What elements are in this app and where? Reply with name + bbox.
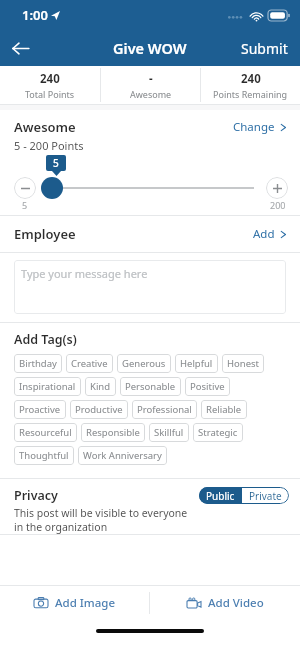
button[interactable]: Back xyxy=(0,30,40,66)
staticText: 1:00 xyxy=(22,6,48,24)
staticText: Reliable xyxy=(206,403,242,416)
staticText: Total Points xyxy=(25,88,75,100)
staticText: Resourceful xyxy=(19,426,72,439)
staticText: 5 xyxy=(53,156,59,170)
staticText: Personable xyxy=(125,380,176,393)
staticText: Responsible xyxy=(86,426,140,439)
button[interactable]: Points slider xyxy=(41,177,63,199)
button[interactable]: Public xyxy=(199,487,242,504)
staticText: Add Image xyxy=(55,595,116,611)
button[interactable]: Positive xyxy=(185,377,230,396)
button[interactable]: Employee xyxy=(0,216,300,252)
button[interactable]: Productive xyxy=(70,400,128,419)
button[interactable]: Inspirational xyxy=(14,377,81,396)
staticText: Helpful xyxy=(180,357,213,370)
staticText: Add xyxy=(253,226,275,242)
staticText: Professional xyxy=(137,403,192,416)
staticText: Add Video xyxy=(208,595,264,611)
staticText: Public xyxy=(206,489,235,503)
staticText: 5 xyxy=(22,199,28,211)
staticText: Points Remaining xyxy=(213,88,288,100)
button[interactable]: Increase points xyxy=(266,177,288,199)
staticText: Creative xyxy=(71,357,108,370)
staticText: 240 xyxy=(241,71,261,87)
staticText: Work Anniversary xyxy=(83,449,162,462)
staticText: Birthday xyxy=(19,357,57,370)
staticText: Awesome xyxy=(130,88,172,100)
button[interactable]: Proactive xyxy=(14,400,66,419)
button[interactable]: Resourceful xyxy=(14,423,77,442)
button[interactable]: - xyxy=(101,66,200,104)
button[interactable]: Add Video xyxy=(150,586,300,620)
staticText: Awesome xyxy=(14,118,76,136)
staticText: Thoughtful xyxy=(19,449,69,462)
staticText: Give WOW xyxy=(113,38,187,58)
button[interactable]: 240 xyxy=(201,66,300,104)
staticText: 5 - 200 Points xyxy=(14,138,84,153)
button[interactable]: Honest xyxy=(222,354,264,373)
staticText: Employee xyxy=(14,225,253,243)
button[interactable]: Generous xyxy=(117,354,171,373)
button[interactable]: Decrease points xyxy=(14,177,36,199)
button[interactable]: Professional xyxy=(132,400,197,419)
button[interactable]: Work Anniversary xyxy=(78,446,167,465)
button[interactable]: Add Image xyxy=(0,586,149,620)
staticText: This post will be visible to everyone in… xyxy=(14,506,193,534)
button[interactable]: Reliable xyxy=(201,400,247,419)
button[interactable]: Kind xyxy=(85,377,116,396)
staticText: Kind xyxy=(90,380,111,393)
staticText: Skillful xyxy=(154,426,184,439)
staticText: Productive xyxy=(75,403,123,416)
staticText: - xyxy=(149,71,153,87)
button[interactable]: 240 xyxy=(0,66,100,104)
button[interactable]: Thoughtful xyxy=(14,446,74,465)
button[interactable]: Helpful xyxy=(175,354,218,373)
button[interactable]: Private xyxy=(242,487,289,504)
staticText: Strategic xyxy=(198,426,238,439)
button[interactable]: Strategic xyxy=(193,423,243,442)
button[interactable]: Skillful xyxy=(149,423,189,442)
staticText: Inspirational xyxy=(19,380,76,393)
button[interactable]: Submit xyxy=(229,33,300,64)
staticText: Private xyxy=(249,489,282,503)
button[interactable]: Responsible xyxy=(81,423,145,442)
button[interactable]: Birthday xyxy=(14,354,62,373)
button[interactable]: Change xyxy=(233,118,288,135)
staticText: Privacy xyxy=(14,487,58,504)
staticText: Add Tag(s) xyxy=(14,331,77,348)
button[interactable]: Creative xyxy=(66,354,113,373)
staticText: 200 xyxy=(270,199,286,211)
staticText: Change xyxy=(233,119,275,135)
staticText: Honest xyxy=(227,357,259,370)
button[interactable]: Type your message here xyxy=(14,260,286,314)
staticText: Generous xyxy=(122,357,166,370)
staticText: 240 xyxy=(40,71,60,87)
staticText: Positive xyxy=(190,380,225,393)
staticText: Proactive xyxy=(19,403,61,416)
staticText: Type your message here xyxy=(21,266,148,281)
button[interactable]: Personable xyxy=(120,377,181,396)
staticText: Submit xyxy=(241,39,288,58)
